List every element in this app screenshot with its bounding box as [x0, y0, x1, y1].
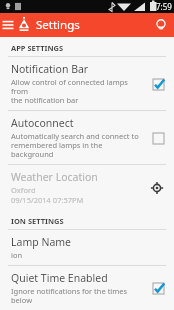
staticText: Lamp Name — [11, 235, 72, 249]
staticText: Notification Bar — [11, 62, 89, 76]
button[interactable]: Open navigation drawer — [0, 17, 16, 33]
staticText: APP SETTINGS — [11, 43, 64, 53]
staticText: ion — [11, 250, 23, 260]
staticText: Quiet Time Enabled — [11, 271, 108, 285]
button[interactable]: Unchecked — [150, 130, 166, 146]
staticText: Autoconnect — [11, 116, 74, 130]
staticText: Weather Location — [11, 170, 98, 184]
staticText: 09/15/2014 07:57PM — [11, 195, 84, 205]
button[interactable]: Weather Location — [0, 165, 174, 210]
button[interactable]: Lamp Name — [0, 230, 174, 265]
button[interactable]: Notification Bar — [0, 57, 174, 110]
staticText: Oxford — [11, 185, 36, 195]
staticText: Allow control of connected lamps from th… — [11, 77, 144, 105]
staticText: ION SETTINGS — [11, 216, 64, 226]
staticText: Settings — [36, 17, 80, 33]
staticText: 7:59 — [156, 1, 172, 12]
staticText: Ignore notifications for the times below — [11, 286, 144, 305]
button[interactable]: Detect location — [148, 179, 166, 197]
button[interactable]: Quiet Time Enabled — [0, 266, 174, 310]
staticText: Automatically search and connect to reme… — [11, 131, 144, 159]
button[interactable]: Autoconnect — [0, 111, 174, 164]
button[interactable]: Toggle lamp — [152, 16, 170, 34]
button[interactable]: Checked — [150, 280, 166, 296]
button[interactable]: Checked — [150, 76, 166, 92]
